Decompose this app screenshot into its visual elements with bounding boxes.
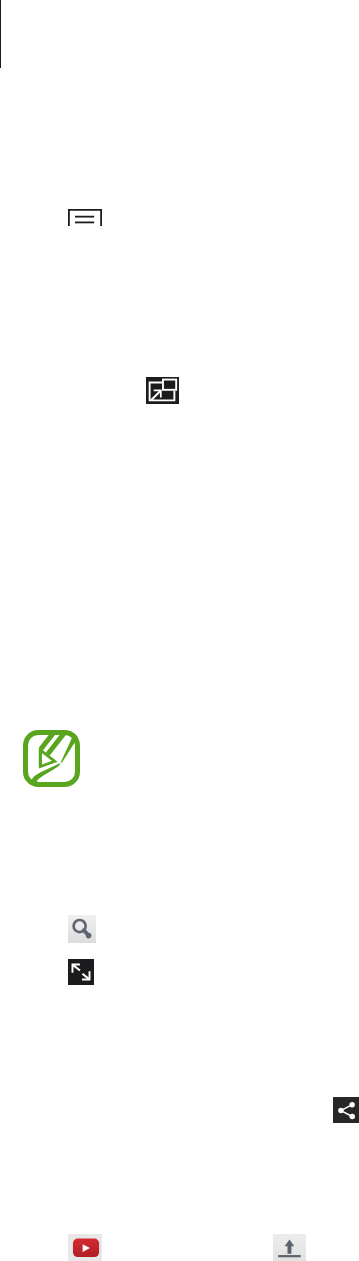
button[interactable]: Pop-up view: [146, 377, 179, 404]
button[interactable]: Upload: [273, 1234, 306, 1261]
button[interactable]: Search: [68, 915, 96, 943]
button[interactable]: Share: [333, 1097, 359, 1123]
button[interactable]: Menu: [68, 209, 102, 227]
button[interactable]: Expand: [68, 959, 94, 985]
button[interactable]: S Note: [23, 730, 80, 787]
button[interactable]: YouTube: [68, 1234, 102, 1261]
